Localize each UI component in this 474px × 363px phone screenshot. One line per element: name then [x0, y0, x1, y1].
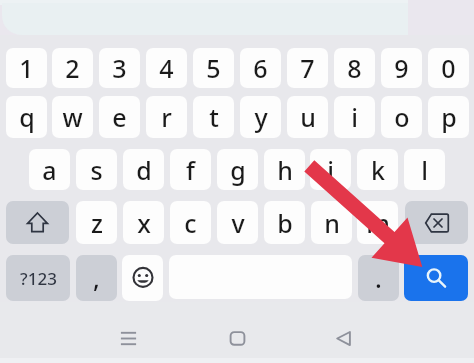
staticText: a [42, 153, 57, 187]
staticText: 2 [65, 51, 80, 85]
button[interactable]: l [404, 149, 445, 190]
staticText: z [91, 206, 103, 240]
button[interactable]: s [76, 149, 117, 190]
button[interactable]: Backspace [405, 201, 468, 244]
staticText: l [421, 153, 428, 187]
button[interactable]: Shift [6, 201, 69, 244]
staticText: , [93, 261, 100, 295]
button[interactable]: v [217, 201, 258, 244]
staticText: . [375, 261, 382, 295]
staticText: w [62, 100, 83, 134]
button[interactable]: 8 [334, 48, 375, 88]
staticText: m [366, 206, 390, 240]
button[interactable]: i [334, 96, 375, 138]
button[interactable]: g [217, 149, 258, 190]
button[interactable]: u [287, 96, 328, 138]
button[interactable]: a [29, 149, 70, 190]
button[interactable]: 0 [428, 48, 469, 88]
button[interactable]: m [357, 201, 398, 244]
button[interactable]: 1 [6, 48, 47, 88]
button[interactable]: 6 [240, 48, 281, 88]
button[interactable]: t [193, 96, 234, 138]
staticText: 6 [253, 51, 268, 85]
button[interactable]: r [146, 96, 187, 138]
staticText: x [137, 206, 151, 240]
staticText: r [161, 100, 172, 134]
staticText: e [112, 100, 127, 134]
staticText: f [186, 153, 195, 187]
staticText: 9 [394, 51, 409, 85]
button[interactable]: z [76, 201, 117, 244]
button[interactable]: 7 [287, 48, 328, 88]
button[interactable]: w [52, 96, 93, 138]
button[interactable]: b [264, 201, 305, 244]
button[interactable]: c [170, 201, 211, 244]
button[interactable]: Emoji [122, 255, 163, 301]
staticText: 3 [112, 51, 127, 85]
staticText: 8 [347, 51, 362, 85]
button[interactable]: k [357, 149, 398, 190]
staticText: d [136, 153, 152, 187]
button[interactable]: p [428, 96, 469, 138]
button[interactable]: n [311, 201, 352, 244]
button[interactable]: Search [404, 255, 468, 301]
button[interactable]: 5 [193, 48, 234, 88]
staticText: c [184, 206, 197, 240]
staticText: 5 [206, 51, 221, 85]
button[interactable]: . [358, 255, 399, 301]
staticText: u [300, 100, 316, 134]
staticText: o [394, 100, 410, 134]
button[interactable]: q [6, 96, 47, 138]
button[interactable]: y [240, 96, 281, 138]
staticText: j [327, 153, 334, 187]
button[interactable]: 9 [381, 48, 422, 88]
staticText: g [230, 153, 246, 187]
staticText: v [231, 206, 245, 240]
button[interactable]: 2 [52, 48, 93, 88]
staticText: ?123 [20, 267, 57, 290]
staticText: y [254, 100, 268, 134]
staticText: n [324, 206, 340, 240]
staticText: h [277, 153, 293, 187]
button[interactable]: Home [207, 314, 268, 363]
button[interactable]: o [381, 96, 422, 138]
staticText: 7 [300, 51, 315, 85]
button[interactable]: , [76, 255, 117, 301]
staticText: q [19, 100, 35, 134]
staticText: b [277, 206, 293, 240]
staticText: p [441, 100, 457, 134]
staticText: t [209, 100, 219, 134]
staticText: i [351, 100, 358, 134]
staticText: 4 [159, 51, 174, 85]
button[interactable]: h [264, 149, 305, 190]
button[interactable]: 3 [99, 48, 140, 88]
staticText: 0 [441, 51, 456, 85]
staticText: 1 [19, 51, 34, 85]
button[interactable]: d [123, 149, 164, 190]
button[interactable]: f [170, 149, 211, 190]
button[interactable]: x [123, 201, 164, 244]
staticText: k [371, 153, 385, 187]
button[interactable]: 4 [146, 48, 187, 88]
button[interactable]: e [99, 96, 140, 138]
button[interactable]: ?123 [6, 255, 70, 301]
button[interactable]: Back [313, 314, 374, 363]
button[interactable]: Recents [98, 314, 159, 363]
button[interactable]: j [310, 149, 351, 190]
staticText: s [90, 153, 103, 187]
